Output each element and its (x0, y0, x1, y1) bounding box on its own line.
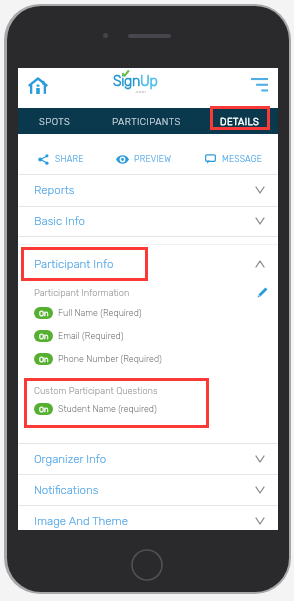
button[interactable]: Organizer Info (18, 443, 278, 475)
staticText: Up (140, 73, 158, 90)
staticText: Notifications (34, 483, 99, 497)
button[interactable]: PARTICIPANTS (100, 108, 193, 134)
staticText: Basic Info (34, 214, 86, 228)
staticText: MESSAGE (222, 154, 263, 164)
staticText: Participant Info (34, 257, 114, 271)
staticText: Image And Theme (34, 514, 128, 528)
button[interactable]: Image And Theme (18, 505, 278, 536)
staticText: On (39, 309, 49, 318)
staticText: Organizer Info (34, 452, 107, 466)
button[interactable]: Edit (256, 286, 269, 299)
button[interactable]: Notifications (18, 474, 278, 505)
staticText: SHARE (55, 154, 84, 164)
button[interactable]: Menu (246, 72, 272, 96)
staticText: DETAILS (220, 116, 260, 127)
button[interactable]: Home (25, 73, 51, 99)
staticText: Reports (34, 183, 75, 197)
button[interactable]: Basic Info (18, 206, 278, 236)
staticText: Custom Participant Questions (34, 385, 158, 396)
button[interactable]: Reports (18, 174, 278, 206)
button[interactable]: SPOTS (18, 108, 92, 134)
staticText: Student Name (required) (58, 404, 157, 415)
staticText: On (39, 332, 49, 341)
staticText: SPOTS (39, 116, 71, 127)
staticText: Email (Required) (58, 331, 124, 342)
staticText: Participant Information (34, 287, 130, 298)
button[interactable]: PREVIEW (109, 139, 178, 178)
staticText: PREVIEW (134, 154, 172, 164)
button[interactable]: DETAILS (201, 108, 278, 134)
staticText: PARTICIPANTS (112, 116, 181, 127)
staticText: .com (135, 89, 146, 94)
staticText: Phone Number (Required) (58, 354, 162, 365)
button[interactable]: SHARE (30, 139, 90, 178)
staticText: On (39, 355, 49, 364)
button[interactable]: MESSAGE (199, 139, 268, 178)
button[interactable]: Participant Info (18, 247, 278, 281)
staticText: Full Name (Required) (58, 308, 142, 319)
staticText: Sign (113, 73, 140, 90)
staticText: On (39, 405, 49, 414)
